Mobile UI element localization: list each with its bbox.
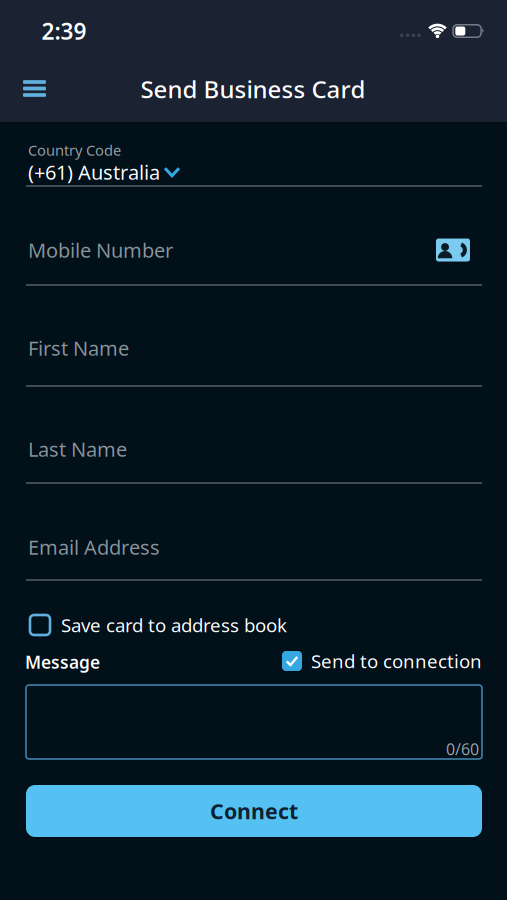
button[interactable]: Save card to address book (30, 613, 287, 637)
staticText: Last Name (28, 436, 127, 462)
staticText: Send Business Card (140, 73, 365, 105)
button[interactable]: Connect (26, 785, 482, 837)
button[interactable]: Choose from contacts (436, 238, 470, 261)
staticText: (+61) Australia (28, 159, 160, 185)
staticText: First Name (28, 335, 129, 361)
staticText: Save card to address book (61, 613, 287, 637)
button[interactable]: (+61) Australia (28, 159, 179, 185)
staticText: Send to connection (311, 649, 482, 673)
button[interactable]: Send to connection (282, 649, 482, 673)
staticText: Email Address (28, 534, 160, 560)
button[interactable]: Menu (16, 72, 52, 104)
staticText: Message (25, 650, 100, 673)
staticText: Mobile Number (28, 237, 173, 263)
staticText: 2:39 (41, 16, 86, 46)
staticText: Country Code (28, 140, 121, 160)
staticText: Connect (210, 797, 298, 825)
staticText: 0/60 (446, 738, 479, 760)
